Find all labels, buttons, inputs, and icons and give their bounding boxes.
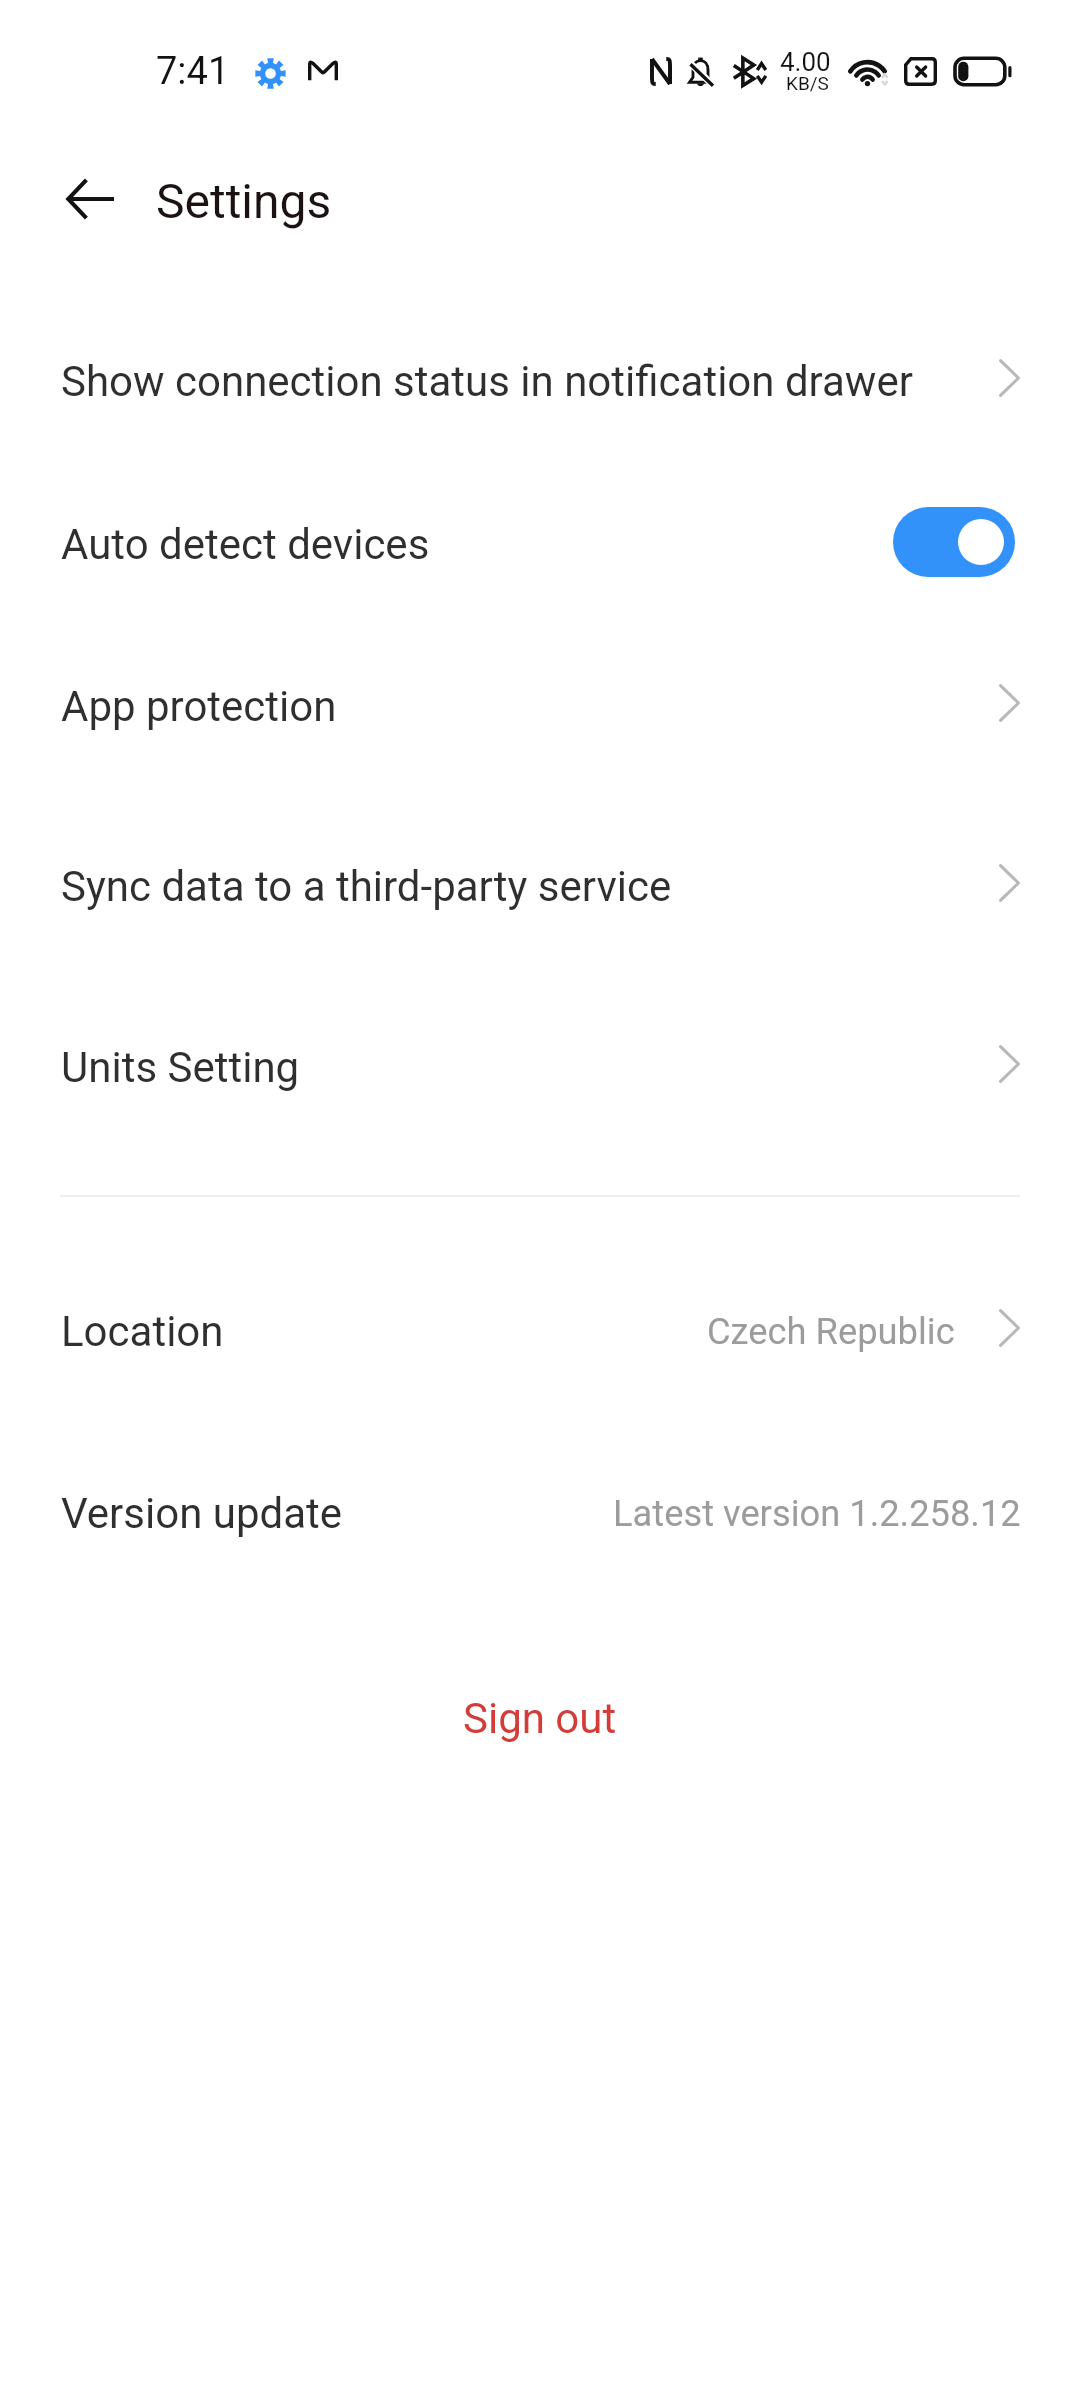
staticText: Location xyxy=(61,1307,224,1356)
button[interactable]: Sign out xyxy=(423,1670,657,1767)
staticText: Czech Republic xyxy=(707,1310,955,1353)
staticText: Version update xyxy=(61,1489,343,1538)
staticText: Settings xyxy=(156,173,332,229)
button[interactable]: Sync data to a third-party service xyxy=(0,796,1080,976)
staticText: 7:41 xyxy=(156,49,230,94)
staticText: Show connection status in notification d… xyxy=(61,357,913,406)
button[interactable]: Location xyxy=(0,1240,1080,1422)
button[interactable]: Show connection status in notification d… xyxy=(0,300,1080,462)
staticText: Latest version 1.2.258.12 xyxy=(613,1492,1021,1535)
staticText: Units Setting xyxy=(61,1043,300,1092)
staticText: App protection xyxy=(61,682,337,731)
button[interactable]: Auto detect devices, on xyxy=(893,507,1015,577)
staticText: 4.00 xyxy=(780,47,831,77)
staticText: Auto detect devices xyxy=(61,520,430,569)
button[interactable]: Units Setting xyxy=(0,977,1080,1157)
staticText: Sign out xyxy=(463,1694,617,1743)
staticText: Sync data to a third-party service xyxy=(61,862,672,911)
button[interactable]: Back xyxy=(45,154,135,244)
button[interactable]: App protection xyxy=(0,616,1080,796)
button[interactable]: Version update xyxy=(0,1422,1080,1604)
staticText: KB/S xyxy=(786,72,829,94)
button[interactable]: Auto detect devices xyxy=(0,463,1080,625)
